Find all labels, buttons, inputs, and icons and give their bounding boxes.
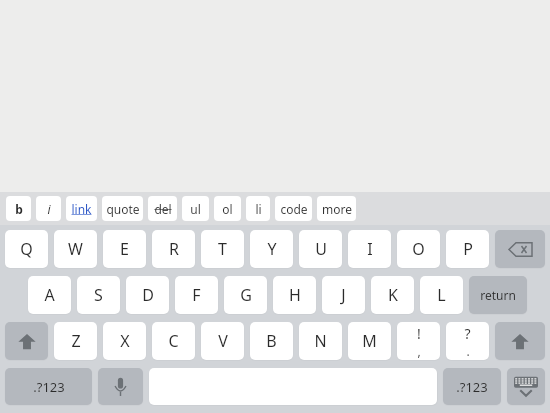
button[interactable]: U	[299, 230, 342, 268]
button[interactable]: Shift	[495, 322, 545, 360]
staticText: E	[120, 238, 129, 260]
staticText: P	[463, 238, 473, 260]
staticText: i	[47, 201, 51, 217]
button[interactable]: P	[446, 230, 489, 268]
button[interactable]: R	[152, 230, 195, 268]
staticText: L	[437, 284, 446, 306]
staticText: H	[289, 284, 301, 306]
button[interactable]: .?123	[5, 368, 92, 405]
staticText: T	[218, 238, 227, 260]
staticText: R	[169, 238, 179, 260]
staticText: del	[154, 201, 172, 217]
button[interactable]: V	[201, 322, 244, 360]
button[interactable]: link	[66, 196, 97, 221]
button[interactable]: Y	[250, 230, 293, 268]
button[interactable]: Hide keyboard	[507, 368, 545, 405]
button[interactable]: Q	[5, 230, 48, 268]
staticText: G	[240, 284, 252, 306]
staticText: X	[120, 330, 130, 352]
staticText: ul	[190, 201, 201, 217]
button[interactable]: code	[275, 196, 312, 221]
staticText: U	[315, 238, 327, 260]
button[interactable]: ol	[214, 196, 241, 221]
staticText: Z	[71, 330, 81, 352]
button[interactable]: W	[54, 230, 97, 268]
button[interactable]: Shift	[5, 322, 48, 360]
button[interactable]: N	[299, 322, 342, 360]
staticText: li	[255, 201, 262, 217]
button[interactable]: .?123	[443, 368, 501, 405]
button[interactable]: H	[273, 276, 316, 314]
staticText: S	[94, 284, 103, 306]
button[interactable]: ?	[446, 322, 489, 360]
staticText: return	[480, 287, 516, 303]
button[interactable]: X	[103, 322, 146, 360]
staticText: O	[412, 238, 425, 260]
staticText: W	[68, 238, 83, 260]
button[interactable]: B	[250, 322, 293, 360]
button[interactable]: I	[348, 230, 391, 268]
staticText: code	[280, 201, 308, 217]
staticText: V	[218, 330, 228, 352]
button[interactable]: O	[397, 230, 440, 268]
button[interactable]: !	[397, 322, 440, 360]
staticText: .	[466, 343, 470, 359]
button[interactable]: J	[322, 276, 365, 314]
staticText: D	[142, 284, 154, 306]
staticText: A	[44, 284, 55, 306]
button[interactable]: Z	[54, 322, 97, 360]
staticText: ol	[222, 201, 233, 217]
button[interactable]: M	[348, 322, 391, 360]
staticText: .?123	[33, 378, 65, 396]
staticText: b	[15, 201, 23, 217]
button[interactable]: G	[224, 276, 267, 314]
staticText: .?123	[456, 378, 488, 396]
button[interactable]: li	[246, 196, 270, 221]
button[interactable]: T	[201, 230, 244, 268]
button[interactable]: Dictate	[98, 368, 143, 405]
staticText: M	[362, 330, 377, 352]
staticText: Y	[267, 238, 277, 260]
staticText: J	[341, 284, 346, 306]
staticText: N	[314, 330, 327, 352]
staticText: quote	[106, 201, 140, 217]
button[interactable]: K	[371, 276, 414, 314]
button[interactable]: return	[469, 276, 527, 314]
staticText: link	[71, 201, 92, 217]
button[interactable]: C	[152, 322, 195, 360]
button[interactable]: F	[175, 276, 218, 314]
staticText: I	[367, 238, 373, 260]
button[interactable]: S	[77, 276, 120, 314]
button[interactable]: b	[6, 196, 31, 221]
button[interactable]: L	[420, 276, 463, 314]
button[interactable]: quote	[102, 196, 143, 221]
button[interactable]: E	[103, 230, 146, 268]
staticText: C	[168, 330, 179, 352]
staticText: more	[322, 201, 352, 217]
staticText: Q	[20, 238, 33, 260]
staticText: ,	[417, 343, 421, 359]
button[interactable]: del	[148, 196, 177, 221]
staticText: ?	[464, 324, 471, 343]
staticText: F	[192, 284, 201, 306]
button[interactable]: i	[36, 196, 61, 221]
button[interactable]: Backspace	[495, 230, 545, 268]
staticText: B	[266, 330, 277, 352]
staticText: !	[417, 324, 421, 343]
button[interactable]: ul	[182, 196, 209, 221]
button[interactable]: A	[28, 276, 71, 314]
button[interactable]: D	[126, 276, 169, 314]
button[interactable]: more	[317, 196, 356, 221]
staticText: K	[388, 284, 398, 306]
